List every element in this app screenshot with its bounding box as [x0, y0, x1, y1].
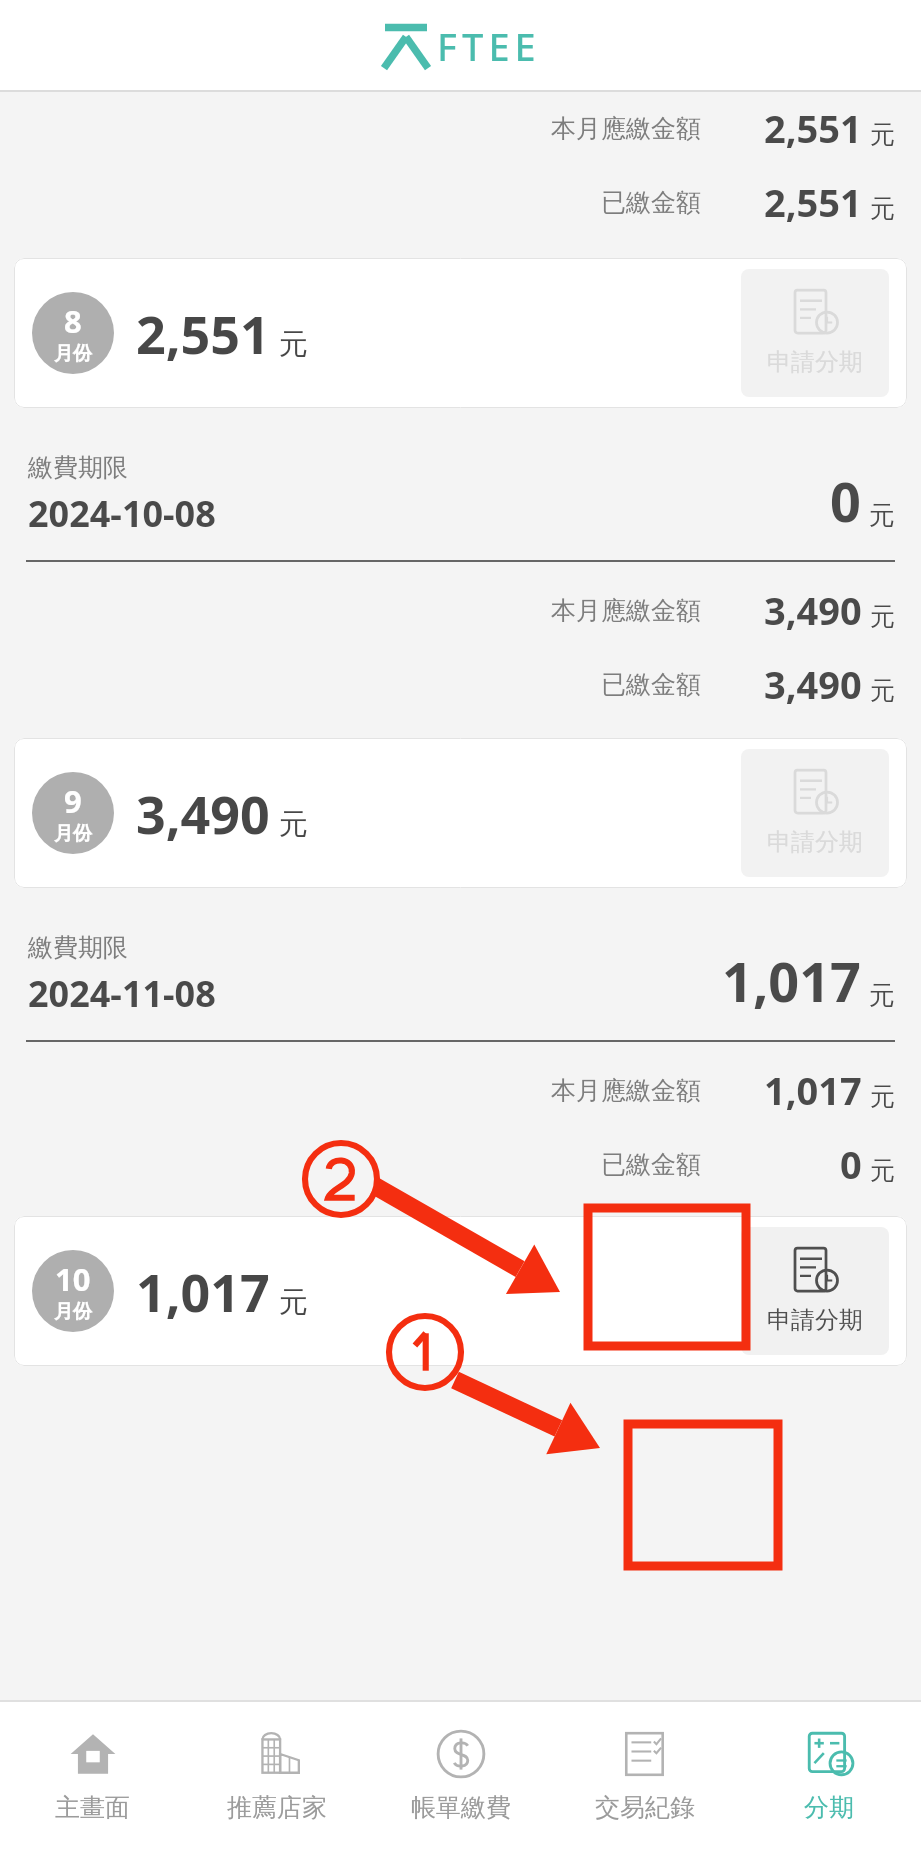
- staticText: 元: [279, 326, 308, 363]
- staticText: 申請分期: [767, 1305, 863, 1335]
- staticText: 月份: [54, 822, 92, 846]
- staticText: 2,551: [136, 298, 270, 369]
- staticText: FTEE: [437, 20, 541, 72]
- button[interactable]: 8: [14, 258, 907, 408]
- staticText: 本月應繳金額: [551, 113, 701, 144]
- staticText: 申請分期: [767, 827, 863, 857]
- staticText: 繳費期限: [28, 452, 128, 483]
- staticText: 元: [870, 675, 895, 706]
- staticText: 9: [64, 780, 82, 822]
- staticText: 1,017: [722, 944, 861, 1018]
- staticText: 繳費期限: [28, 932, 128, 963]
- staticText: 本月應繳金額: [551, 1075, 701, 1106]
- staticText: 元: [870, 193, 895, 224]
- staticText: 2,551: [764, 176, 862, 228]
- staticText: 帳單繳費: [411, 1792, 511, 1823]
- staticText: 交易紀錄: [595, 1792, 695, 1823]
- staticText: 已繳金額: [601, 1149, 701, 1180]
- button[interactable]: 申請分期: [741, 269, 889, 397]
- staticText: 元: [870, 1081, 895, 1112]
- button[interactable]: 申請分期: [741, 1227, 889, 1355]
- staticText: 元: [869, 979, 895, 1012]
- staticText: 10: [55, 1258, 91, 1300]
- staticText: 月份: [54, 1300, 92, 1324]
- button[interactable]: 推薦店家: [185, 1702, 369, 1866]
- staticText: 1,017: [764, 1064, 862, 1116]
- button[interactable]: 交易紀錄: [553, 1702, 737, 1866]
- button[interactable]: 帳單繳費: [369, 1702, 553, 1866]
- staticText: 本月應繳金額: [551, 595, 701, 626]
- staticText: 3,490: [764, 658, 862, 710]
- staticText: 元: [279, 806, 308, 843]
- staticText: 推薦店家: [227, 1792, 327, 1823]
- staticText: 0: [830, 464, 861, 538]
- staticText: 已繳金額: [601, 187, 701, 218]
- staticText: 主畫面: [55, 1792, 130, 1823]
- staticText: 申請分期: [767, 347, 863, 377]
- staticText: 元: [279, 1284, 308, 1321]
- staticText: 元: [869, 499, 895, 532]
- button[interactable]: 10: [14, 1216, 907, 1366]
- staticText: 2024-11-08: [28, 969, 216, 1018]
- button[interactable]: 9: [14, 738, 907, 888]
- staticText: 2024-10-08: [28, 489, 216, 538]
- staticText: 元: [870, 601, 895, 632]
- staticText: 月份: [54, 342, 92, 366]
- button[interactable]: 申請分期: [741, 749, 889, 877]
- staticText: 元: [870, 119, 895, 150]
- staticText: 已繳金額: [601, 669, 701, 700]
- staticText: 3,490: [136, 778, 270, 849]
- staticText: 1,017: [136, 1256, 270, 1327]
- button[interactable]: 分期: [737, 1702, 921, 1866]
- staticText: 3,490: [764, 584, 862, 636]
- button[interactable]: 主畫面: [0, 1702, 185, 1866]
- staticText: 0: [840, 1138, 862, 1190]
- staticText: 2,551: [764, 102, 862, 154]
- staticText: 元: [870, 1155, 895, 1186]
- staticText: 分期: [804, 1792, 854, 1823]
- staticText: 8: [64, 300, 82, 342]
